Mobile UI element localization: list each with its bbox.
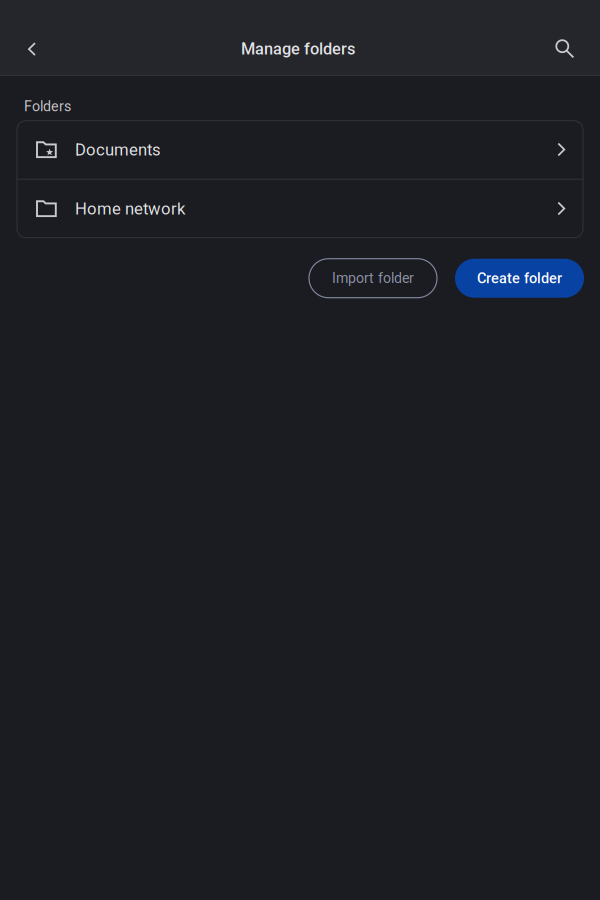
staticText: Manage folders (241, 39, 355, 59)
staticText: Folders (24, 98, 71, 115)
button[interactable]: Documents (17, 121, 583, 179)
button[interactable]: Search (543, 22, 587, 76)
button[interactable]: Back (9, 22, 53, 76)
staticText: Documents (75, 140, 161, 159)
button[interactable]: Home network (17, 180, 583, 238)
staticText: Home network (75, 199, 185, 218)
staticText: Import folder (332, 270, 414, 286)
button[interactable]: Create folder (455, 259, 584, 298)
staticText: Create folder (477, 270, 562, 287)
button[interactable]: Import folder (309, 259, 437, 298)
